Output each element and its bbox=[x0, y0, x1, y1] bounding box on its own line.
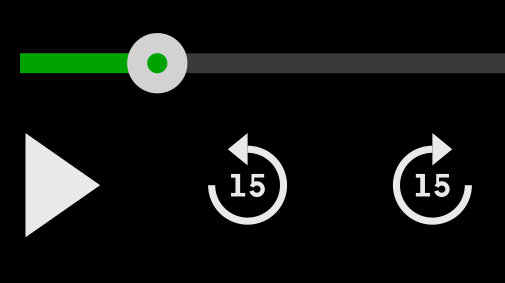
button[interactable]: Playback position bbox=[20, 33, 505, 93]
button[interactable]: Skip forward 15 seconds bbox=[376, 129, 488, 241]
button[interactable]: Skip back 15 seconds bbox=[192, 129, 304, 241]
button[interactable]: Play bbox=[25, 132, 101, 238]
